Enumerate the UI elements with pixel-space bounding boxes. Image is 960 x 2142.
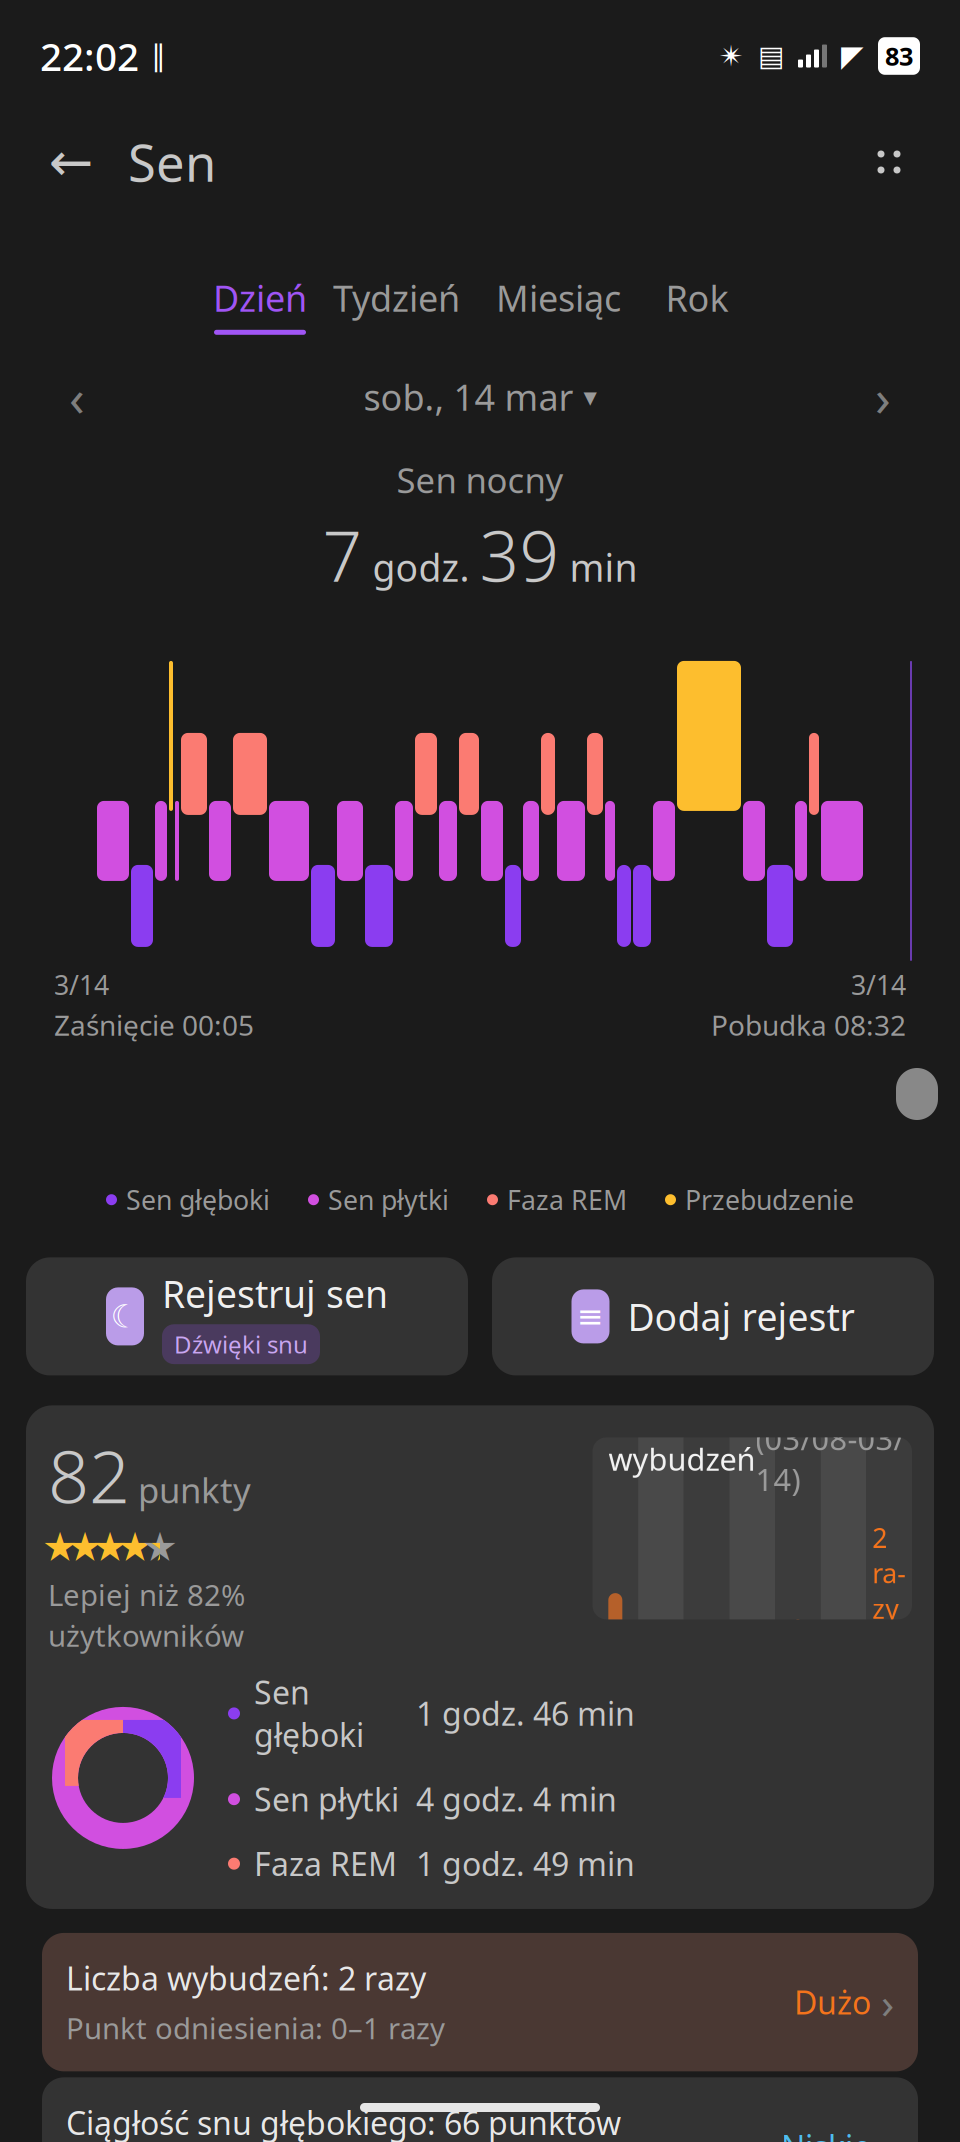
staticText: Dźwięki snu — [174, 1328, 308, 1360]
staticText: ★ — [149, 1524, 185, 1570]
staticText: 39 — [479, 509, 559, 601]
staticText: ★ — [92, 1524, 128, 1570]
staticText: Sen płytki — [328, 1182, 449, 1217]
staticText: Zaśnięcie 00:05 — [54, 1006, 254, 1043]
staticText: ▾ — [583, 382, 596, 412]
button[interactable]: Miesiąc — [478, 274, 639, 335]
staticText: 2 razy — [872, 1520, 906, 1626]
staticText: ★ — [67, 1524, 103, 1570]
staticText: ★ — [142, 1524, 178, 1570]
button[interactable]: Ciągłość snu głębokiego: 66 punktów — [42, 2077, 918, 2142]
staticText: Tydzień — [333, 274, 460, 322]
button[interactable]: Poprzedni dzień — [42, 367, 112, 427]
staticText: Punkt odniesienia: 0–1 razy — [66, 2008, 445, 2047]
staticText: 1 godz. 46 min — [416, 1692, 635, 1735]
staticText: Ciągłość snu głębokiego: 66 punktów — [66, 2101, 621, 2142]
button[interactable]: ☾ — [26, 1257, 468, 1375]
staticText: 3/14 — [851, 967, 906, 1002]
staticText: ☾ — [110, 1298, 139, 1335]
staticText: Niskie — [781, 2125, 871, 2142]
staticText: Dużo — [794, 1981, 871, 2023]
staticText: 82 — [48, 1427, 130, 1523]
staticText: godz. — [362, 542, 479, 592]
staticText: użytkowników — [48, 1616, 244, 1655]
button[interactable]: Tydzień — [315, 274, 478, 335]
staticText: 22:02 — [40, 30, 139, 82]
button[interactable]: Wstecz — [36, 127, 106, 197]
staticText: min — [559, 542, 637, 592]
staticText: › — [875, 363, 891, 430]
staticText: ▤ — [758, 40, 784, 72]
staticText: Liczba wybudzeń — [608, 1398, 755, 1520]
staticText: 7 — [322, 509, 362, 601]
staticText: Liczba wybudzeń: 2 razy — [66, 1957, 426, 1999]
staticText: Sen głęboki — [254, 1671, 364, 1756]
staticText: Rejestruj sen — [162, 1269, 388, 1318]
button[interactable]: Następny dzień — [848, 367, 918, 427]
staticText: sob., 14 mar — [363, 373, 573, 421]
button[interactable]: sob., 14 mar — [363, 373, 596, 421]
staticText: ← — [48, 132, 93, 192]
staticText: 1 godz. 49 min — [416, 1842, 635, 1885]
staticText: Pobudka 08:32 — [711, 1006, 906, 1043]
staticText: 3/14 — [54, 967, 109, 1002]
staticText: Dodaj rejestr — [627, 1292, 854, 1341]
staticText: (03/08-03/14) — [755, 1418, 904, 1499]
staticText: Sen — [128, 128, 216, 196]
staticText: Sen głęboki — [126, 1182, 270, 1217]
staticText: Faza REM — [507, 1182, 627, 1217]
staticText: ★ — [117, 1524, 153, 1570]
staticText: Dzień — [213, 274, 307, 322]
staticText: Sen płytki — [254, 1778, 399, 1820]
staticText: Faza REM — [254, 1842, 397, 1885]
staticText: 4 godz. 4 min — [416, 1778, 617, 1820]
staticText: ≡ — [577, 1298, 604, 1335]
staticText: ◤ — [841, 39, 864, 73]
staticText: Lepiej niż 82% — [48, 1575, 245, 1614]
staticText: punkty — [138, 1467, 251, 1513]
staticText: ★ — [42, 1524, 78, 1570]
button[interactable]: Liczba wybudzeń: 2 razy — [42, 1933, 918, 2071]
staticText: ∥ — [151, 39, 166, 73]
button[interactable]: Więcej opcji — [854, 127, 924, 197]
staticText: ✴ — [719, 39, 744, 73]
button[interactable]: Dzień — [205, 274, 315, 335]
button[interactable]: ≡ — [492, 1257, 934, 1375]
staticText: ‹ — [69, 363, 85, 430]
button[interactable]: Rok — [639, 274, 755, 335]
staticText: Miesiąc — [496, 274, 621, 322]
staticText: Przebudzenie — [685, 1182, 854, 1217]
staticText: › — [881, 1974, 894, 2030]
staticText: Sen nocny — [396, 457, 563, 503]
staticText: 83 — [885, 39, 913, 73]
staticText: Rok — [665, 274, 728, 322]
